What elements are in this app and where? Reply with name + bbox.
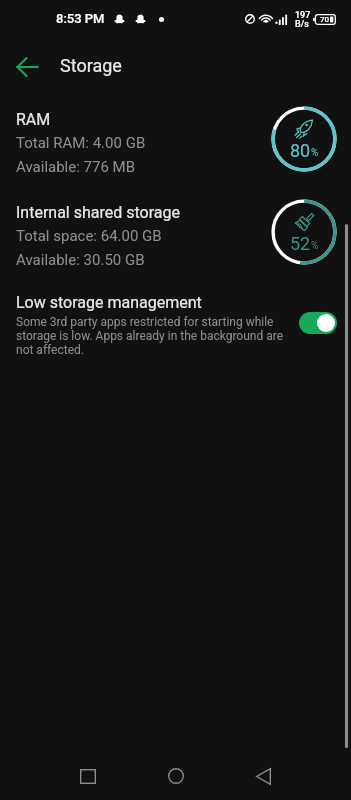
staticText: Low storage management bbox=[16, 293, 202, 312]
staticText: Storage bbox=[60, 55, 122, 76]
staticText: RAM bbox=[16, 110, 51, 129]
staticText: Total space: 64.00 GB bbox=[16, 227, 162, 245]
staticText: 70 bbox=[320, 15, 330, 24]
staticText: Some 3rd party apps restricted for start… bbox=[16, 315, 291, 357]
button[interactable]: Home bbox=[152, 752, 200, 800]
staticText: Available: 776 MB bbox=[16, 158, 136, 176]
staticText: B/s bbox=[295, 19, 309, 30]
staticText: % bbox=[311, 240, 319, 252]
button[interactable]: Back bbox=[239, 752, 287, 800]
button[interactable]: Back bbox=[5, 44, 50, 89]
staticText: 197 bbox=[295, 10, 311, 21]
button[interactable]: Low storage management bbox=[0, 283, 351, 361]
staticText: Total RAM: 4.00 GB bbox=[16, 134, 146, 152]
staticText: 8:53 PM bbox=[56, 11, 105, 26]
button[interactable]: RAM bbox=[0, 96, 351, 178]
staticText: 80 bbox=[290, 140, 311, 161]
button[interactable]: Internal shared storage bbox=[0, 189, 351, 271]
staticText: Available: 30.50 GB bbox=[16, 251, 145, 269]
button[interactable]: Recent apps bbox=[64, 752, 112, 800]
button[interactable]: Low storage management toggle bbox=[299, 312, 337, 334]
staticText: Internal shared storage bbox=[16, 203, 180, 222]
staticText: % bbox=[311, 147, 319, 159]
staticText: 52 bbox=[290, 233, 311, 254]
